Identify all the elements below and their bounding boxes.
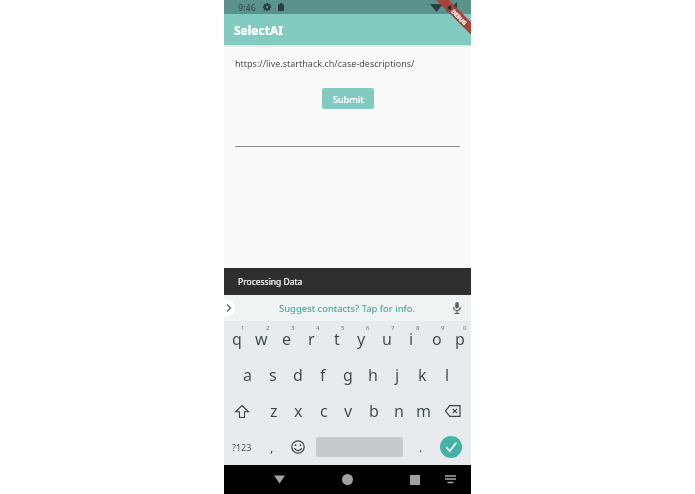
button[interactable]: Submit [322,88,374,109]
button[interactable]: h [360,357,385,393]
button[interactable] [224,393,261,429]
staticText: n [394,400,404,422]
staticText: p [455,328,465,350]
staticText: 9:46 [238,1,256,13]
staticText: 6 [366,324,370,332]
staticText: d [293,364,303,386]
staticText: m [416,400,431,422]
staticText: h [368,364,378,386]
button[interactable] [440,436,462,458]
staticText: Processing Data [238,276,303,288]
staticText: , [270,438,274,456]
staticText: 9 [441,324,445,332]
button[interactable]: j [385,357,410,393]
button[interactable]: q [224,321,249,357]
staticText: l [445,364,450,386]
staticText: g [343,364,353,386]
button[interactable]: , [259,429,284,465]
staticText: DEBUG [450,8,469,26]
staticText: 4 [316,324,320,332]
staticText: y [357,328,366,350]
button[interactable] [436,393,471,429]
staticText: z [270,400,278,422]
staticText: v [344,400,353,422]
button[interactable]: i [399,321,424,357]
staticText: t [334,328,340,350]
button[interactable]: r [299,321,324,357]
staticText: k [418,364,427,386]
staticText: https://live.starthack.ch/case-descripti… [235,57,415,69]
button[interactable]: c [311,393,336,429]
button[interactable]: b [361,393,386,429]
button[interactable]: o [424,321,449,357]
button[interactable]: p [449,321,471,357]
staticText: 7 [391,324,395,332]
button[interactable]: Suggest contacts? Tap for info. [224,295,471,321]
staticText: w [255,328,268,350]
button[interactable]: u [374,321,399,357]
staticText: a [243,364,252,386]
button[interactable]: v [336,393,361,429]
staticText: q [232,328,242,350]
button[interactable]: ?123 [224,429,259,465]
staticText: u [382,328,392,350]
staticText: Submit [333,93,364,105]
staticText: r [308,328,315,350]
staticText: 8 [416,324,420,332]
button[interactable]: g [335,357,360,393]
button[interactable]: n [386,393,411,429]
button[interactable]: t [324,321,349,357]
staticText: 3 [291,324,295,332]
button[interactable]: y [349,321,374,357]
button[interactable]: k [410,357,435,393]
staticText: o [432,328,442,350]
staticText: 2 [266,324,270,332]
button[interactable]: z [261,393,286,429]
button[interactable]: w [249,321,274,357]
staticText: x [294,400,303,422]
staticText: c [320,400,328,422]
staticText: 1 [241,324,245,332]
button[interactable]: f [310,357,335,393]
staticText: 0 [463,324,467,332]
staticText: f [320,364,326,386]
button[interactable]: x [286,393,311,429]
staticText: SelectAI [234,22,283,38]
button[interactable] [342,474,353,485]
button[interactable]: s [260,357,285,393]
staticText: s [269,364,277,386]
staticText: . [419,438,423,456]
button[interactable]: m [411,393,436,429]
button[interactable]: e [274,321,299,357]
staticText: Suggest contacts? Tap for info. [279,302,416,315]
staticText: b [369,400,379,422]
staticText: i [409,328,414,350]
staticText: e [282,328,292,350]
staticText: j [395,364,400,386]
button[interactable]: l [435,357,460,393]
button[interactable] [284,429,312,465]
button[interactable]: . [403,429,438,465]
button[interactable]: a [235,357,260,393]
button[interactable]: d [285,357,310,393]
staticText: ?123 [232,441,252,453]
staticText: 5 [341,324,345,332]
